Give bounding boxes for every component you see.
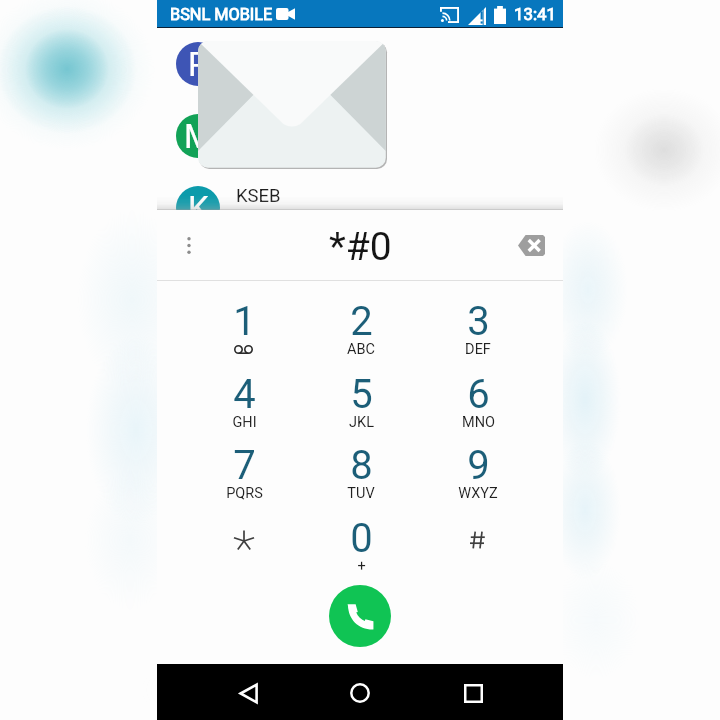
staticText: ABC [347, 341, 375, 358]
button[interactable]: M [157, 100, 563, 172]
staticText: MNO [462, 414, 495, 431]
staticText: 5 [350, 371, 373, 418]
button[interactable]: Dial 9 [419, 433, 536, 505]
button[interactable]: Dial * [185, 506, 302, 578]
staticText: 0 [350, 515, 373, 562]
staticText: BSNL MOBILE [170, 5, 273, 24]
button[interactable]: Dial 4 [185, 362, 302, 434]
staticText: 8 [350, 442, 373, 489]
staticText: M [184, 117, 213, 156]
staticText: P [188, 45, 209, 84]
button[interactable]: Dial 1 [185, 289, 302, 361]
staticText: JKL [349, 414, 374, 431]
staticText: 4 [233, 371, 256, 418]
button[interactable]: Dial 6 [419, 362, 536, 434]
staticText: + [357, 558, 366, 575]
button[interactable]: Dial 0 [302, 506, 419, 578]
button[interactable]: Back [225, 670, 271, 716]
staticText: WXYZ [458, 485, 498, 502]
button[interactable]: Dial # [419, 506, 536, 578]
button[interactable]: More options [173, 229, 205, 261]
staticText: 2 [350, 298, 373, 345]
staticText: 1 [233, 298, 256, 345]
staticText: 9 [467, 442, 490, 489]
button[interactable]: Home [337, 670, 383, 716]
staticText: 6 [467, 371, 490, 418]
staticText: PQRS [226, 485, 263, 502]
button[interactable]: P [157, 28, 563, 100]
staticText: DEF [465, 341, 491, 358]
staticText: *#0 [329, 224, 392, 270]
staticText: TUV [347, 485, 375, 502]
staticText: K [188, 189, 209, 228]
button[interactable]: Dial 8 [302, 433, 419, 505]
staticText: KSEB [236, 185, 281, 207]
button[interactable]: Dial 5 [302, 362, 419, 434]
staticText: 3 [467, 298, 490, 345]
button[interactable]: Backspace [511, 225, 551, 265]
staticText: 13:41 [514, 4, 556, 24]
button[interactable]: Dial 3 [419, 289, 536, 361]
button[interactable]: Recents [450, 670, 496, 716]
button[interactable]: K [157, 172, 563, 244]
staticText: 7 [233, 442, 256, 489]
button[interactable]: Dial 7 [185, 433, 302, 505]
staticText: GHI [232, 414, 257, 431]
button[interactable]: Call [329, 585, 391, 647]
button[interactable]: Dial 2 [302, 289, 419, 361]
